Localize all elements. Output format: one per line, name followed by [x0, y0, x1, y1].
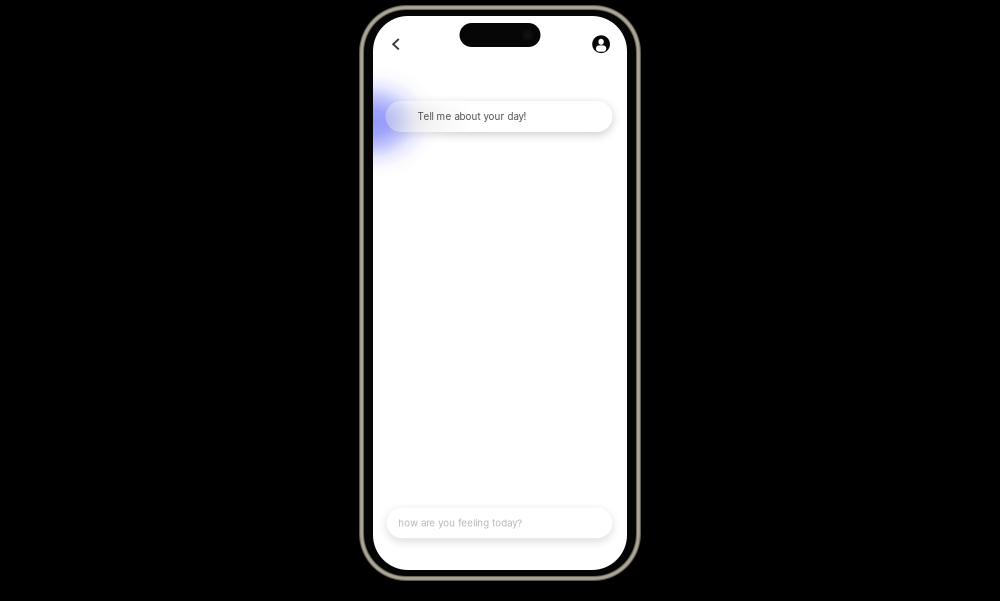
staticText: how are you feeling today? [398, 517, 522, 529]
button[interactable]: Back [381, 28, 411, 60]
staticText: Tell me about your day! [417, 111, 526, 122]
button[interactable]: how are you feeling today? [387, 508, 612, 538]
button[interactable]: Profile [586, 28, 616, 60]
